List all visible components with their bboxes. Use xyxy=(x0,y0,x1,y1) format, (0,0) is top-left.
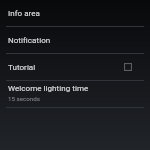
staticText: Welcome lighting time xyxy=(8,84,89,93)
button[interactable]: Welcome lighting time xyxy=(0,81,150,107)
button[interactable]: Info area xyxy=(0,0,150,26)
button[interactable]: Tutorial xyxy=(0,54,150,80)
staticText: Notification xyxy=(8,36,51,45)
staticText: Tutorial xyxy=(8,63,36,72)
staticText: 15 seconds xyxy=(8,95,40,102)
button[interactable]: Tutorial checkbox xyxy=(121,60,135,74)
button[interactable]: Notification xyxy=(0,27,150,53)
staticText: Info area xyxy=(8,9,40,18)
